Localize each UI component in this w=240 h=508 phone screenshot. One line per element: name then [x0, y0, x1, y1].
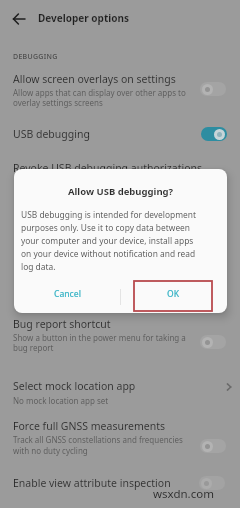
button[interactable]: USB debugging	[0, 121, 240, 148]
button[interactable]	[200, 335, 226, 349]
staticText: Select mock location app	[13, 379, 136, 393]
staticText: Allow USB debugging?	[14, 185, 227, 198]
staticText: Cancel	[54, 288, 81, 300]
staticText: Enable view attribute inspection	[13, 476, 171, 490]
staticText: with no duty cycling	[13, 445, 88, 456]
staticText: Show a button in the power menu for taki…	[13, 332, 186, 343]
button[interactable]	[199, 476, 225, 490]
staticText: No mock location app set	[13, 395, 109, 406]
staticText: OK	[167, 288, 180, 300]
button[interactable]: Allow screen overlays on settings	[0, 70, 240, 110]
staticText: Allow screen overlays on settings	[13, 72, 176, 86]
button[interactable]	[7, 7, 31, 31]
staticText: USB debugging is intended for developmen…	[21, 209, 197, 273]
staticText: Bug report shortcut	[13, 317, 111, 331]
staticText: Revoke USB debugging authorizations	[13, 161, 203, 175]
staticText: DEBUGGING	[13, 52, 58, 62]
staticText: Developer options	[38, 11, 130, 25]
button[interactable]: Cancel	[14, 274, 120, 313]
button[interactable]: OK	[120, 274, 227, 313]
button[interactable]: Select mock location app	[0, 374, 240, 409]
staticText: overlay settings screens	[13, 97, 103, 108]
button[interactable]: Enable view attribute inspection	[0, 472, 240, 496]
staticText: bug report	[13, 342, 54, 353]
staticText: Track all GNSS constellations and freque…	[13, 434, 183, 445]
staticText: USB debugging	[13, 127, 90, 141]
button[interactable]: Force full GNSS measurements	[0, 416, 240, 460]
staticText: Allow apps that can display over other a…	[13, 87, 186, 98]
button[interactable]	[201, 127, 227, 141]
button[interactable]: Revoke USB debugging authorizations	[0, 154, 240, 169]
staticText: Force full GNSS measurements	[13, 419, 165, 433]
button[interactable]	[200, 82, 226, 96]
staticText: wsxdn.com	[153, 486, 214, 502]
button[interactable]: Bug report shortcut	[0, 313, 240, 355]
button[interactable]	[200, 439, 226, 453]
